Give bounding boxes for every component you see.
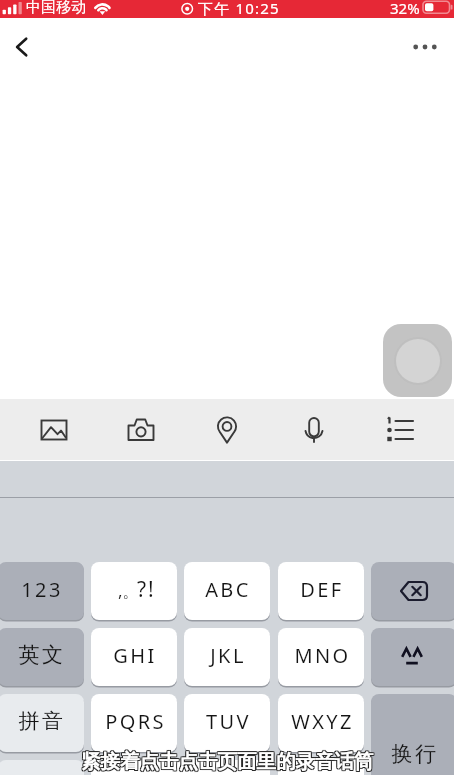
- button[interactable]: WXYZ: [278, 694, 364, 752]
- button[interactable]: [0, 760, 84, 775]
- button[interactable]: PQRS: [91, 694, 177, 752]
- button[interactable]: [278, 760, 364, 775]
- staticText: 紧接着点击点击页面里的录音话筒: [82, 748, 375, 773]
- staticText: ,。: [118, 579, 140, 602]
- staticText: DEF: [300, 576, 344, 603]
- staticText: 123: [21, 576, 63, 603]
- staticText: 紧接着点击点击页面里的录音话筒: [82, 749, 375, 774]
- staticText: PQRS: [105, 708, 166, 735]
- staticText: 紧接着点击点击页面里的录音话筒: [80, 748, 373, 773]
- staticText: 下午 10:25: [198, 0, 280, 16]
- staticText: 紧接着点击点击页面里的录音话筒: [82, 750, 375, 775]
- button[interactable]: ABC: [184, 562, 270, 620]
- staticText: 中国移动: [26, 0, 86, 16]
- button[interactable]: 拼音: [0, 694, 84, 752]
- staticText: 拼音: [18, 708, 66, 734]
- button[interactable]: 123: [0, 562, 84, 620]
- button[interactable]: Location: [195, 399, 259, 460]
- staticText: ABC: [205, 576, 251, 603]
- button[interactable]: DEF: [278, 562, 364, 620]
- button[interactable]: Punctuation: [91, 562, 177, 620]
- staticText: 32%: [390, 0, 420, 16]
- button[interactable]: List: [368, 399, 432, 460]
- staticText: ?!: [137, 575, 156, 604]
- staticText: 紧接着点击点击页面里的录音话筒: [81, 749, 374, 774]
- staticText: TUV: [206, 708, 251, 735]
- staticText: WXYZ: [291, 708, 354, 735]
- staticText: GHI: [113, 642, 157, 669]
- staticText: 换行: [391, 741, 439, 767]
- staticText: JKL: [210, 642, 246, 669]
- button[interactable]: JKL: [184, 628, 270, 686]
- button[interactable]: Backspace: [371, 562, 454, 620]
- button[interactable]: More options: [403, 25, 447, 69]
- button[interactable]: 换行: [371, 694, 454, 775]
- staticText: MNO: [294, 642, 351, 669]
- button[interactable]: Voice: [282, 399, 346, 460]
- button[interactable]: 英文: [0, 628, 84, 686]
- button[interactable]: GHI: [91, 628, 177, 686]
- button[interactable]: Camera: [109, 399, 173, 460]
- button[interactable]: Back: [0, 25, 44, 69]
- button[interactable]: Assistive touch: [383, 324, 452, 397]
- staticText: 紧接着点击点击页面里的录音话筒: [80, 750, 373, 775]
- button[interactable]: Photos: [22, 399, 86, 460]
- button[interactable]: Emoji: [371, 628, 454, 686]
- button[interactable]: TUV: [184, 694, 270, 752]
- button[interactable]: MNO: [278, 628, 364, 686]
- staticText: 英文: [18, 642, 66, 668]
- button[interactable]: [91, 760, 270, 775]
- staticText: 紧接着点击点击页面里的录音话筒: [81, 748, 374, 773]
- staticText: 紧接着点击点击页面里的录音话筒: [81, 750, 374, 775]
- staticText: 紧接着点击点击页面里的录音话筒: [80, 749, 373, 774]
